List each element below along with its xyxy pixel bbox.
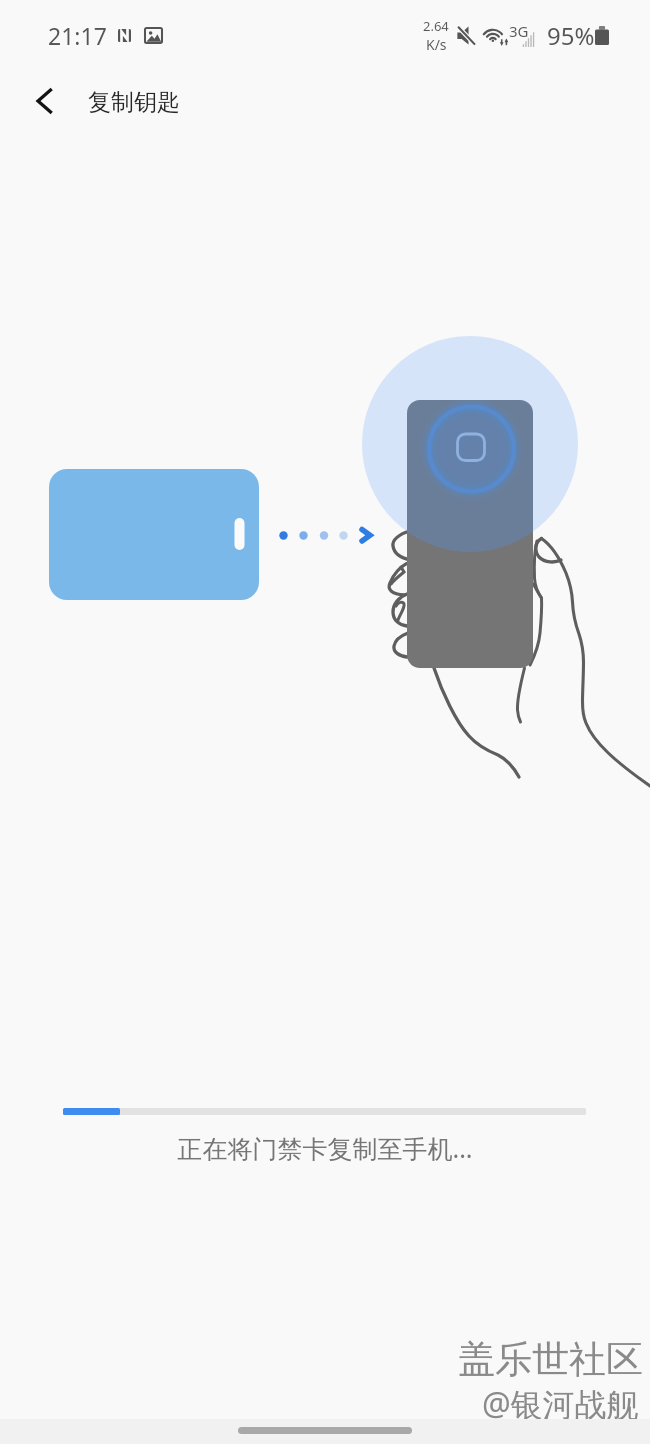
staticText: K/s [426, 35, 447, 54]
staticText: 21:17 [48, 20, 107, 51]
staticText: 盖乐世社区 [458, 1336, 643, 1383]
staticText: 复制钥匙 [88, 88, 180, 117]
staticText: 正在将门禁卡复制至手机... [0, 1131, 650, 1165]
staticText: @银河战舰 [482, 1382, 639, 1426]
staticText: 2.64 [423, 17, 449, 35]
staticText: 95% [547, 19, 595, 52]
button[interactable]: Back [16, 74, 72, 130]
staticText: 3G [509, 21, 529, 41]
